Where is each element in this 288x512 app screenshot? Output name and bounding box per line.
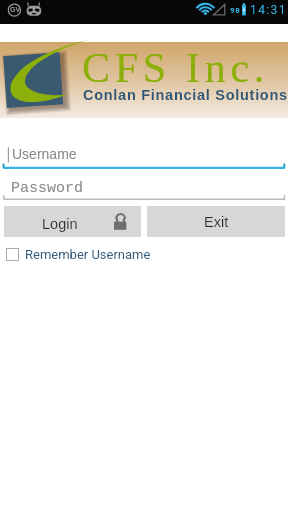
staticText: Login: [42, 216, 78, 232]
button[interactable]: Exit: [147, 206, 285, 237]
button[interactable]: Username: [0, 144, 288, 172]
staticText: Remember Username: [25, 247, 151, 262]
staticText: Username: [12, 146, 77, 162]
button[interactable]: Login: [4, 206, 141, 237]
staticText: GV: [10, 6, 21, 14]
button[interactable]: Password: [0, 177, 288, 203]
staticText: Exit: [204, 214, 229, 230]
staticText: 98: [230, 6, 241, 15]
staticText: Password: [11, 180, 84, 197]
button[interactable]: Remember Username: [6, 245, 151, 263]
staticText: 14:31: [250, 3, 287, 17]
staticText: Conlan Financial Solutions: [83, 87, 288, 103]
staticText: CFS Inc.: [82, 45, 269, 92]
